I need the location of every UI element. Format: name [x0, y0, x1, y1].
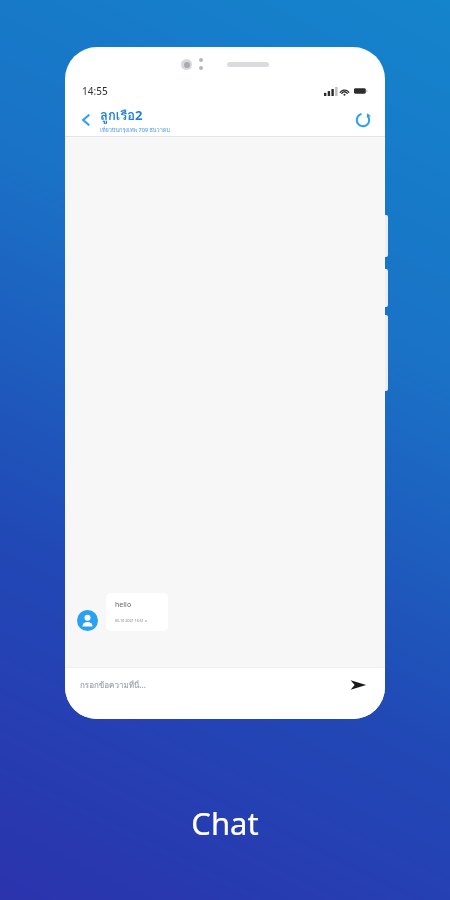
staticText: hello — [115, 600, 132, 610]
button[interactable]: Send — [348, 675, 368, 695]
button[interactable]: Back — [75, 109, 97, 131]
button[interactable]: Sender avatar — [77, 610, 98, 631]
staticText: 05-10-2021 16:51 น — [115, 618, 148, 624]
staticText: เที่ยวบินกรุงเทพ 709 ธันวาคม — [100, 126, 171, 135]
staticText: ลูกเรือ2 — [100, 105, 143, 126]
button[interactable]: ลูกเรือ2 — [100, 105, 353, 135]
staticText: 14:55 — [82, 84, 108, 98]
staticText: กรอกข้อความที่นี่... — [80, 679, 146, 692]
button[interactable]: hello — [106, 593, 168, 631]
button[interactable]: กรอกข้อความที่นี่... — [80, 679, 348, 692]
staticText: Chat — [0, 802, 450, 844]
button[interactable]: Refresh — [353, 110, 373, 130]
